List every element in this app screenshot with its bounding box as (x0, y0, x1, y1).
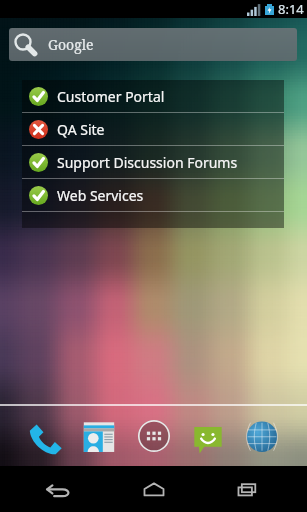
button[interactable]: Customer Portal (22, 80, 284, 112)
staticText: 8:14 (278, 0, 304, 18)
button[interactable]: QA Site (22, 113, 284, 145)
staticText: QA Site (57, 120, 105, 139)
staticText: Support Discussion Forums (57, 153, 238, 172)
staticText: Web Services (57, 186, 144, 205)
button[interactable]: Support Discussion Forums (22, 146, 284, 178)
button[interactable]: Phone (26, 417, 64, 455)
button[interactable]: People (80, 417, 118, 455)
button[interactable]: Browser (243, 417, 281, 455)
button[interactable]: Back (24, 466, 94, 512)
button[interactable]: Google (9, 28, 297, 61)
button[interactable]: Home (119, 466, 189, 512)
button[interactable]: Messaging (189, 417, 227, 455)
button[interactable]: Apps (135, 417, 173, 455)
staticText: Customer Portal (57, 87, 165, 106)
staticText: Google (48, 35, 94, 54)
button[interactable]: Recents (213, 466, 283, 512)
button[interactable]: Web Services (22, 179, 284, 211)
